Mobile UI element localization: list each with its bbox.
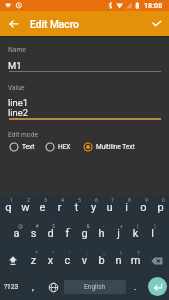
button[interactable]: _: [59, 221, 76, 247]
staticText: d: [42, 227, 59, 240]
button[interactable]: 4: [51, 195, 68, 221]
button[interactable]: +: [110, 221, 127, 247]
button[interactable]: 8: [118, 195, 135, 221]
staticText: l: [144, 227, 161, 240]
staticText: ?123: [4, 283, 19, 291]
staticText: b: [93, 254, 110, 267]
button[interactable]: $: [42, 221, 59, 247]
staticText: 4: [61, 197, 64, 203]
staticText: q: [0, 201, 17, 214]
button[interactable]: 0: [152, 195, 169, 221]
button[interactable]: ": [42, 248, 59, 274]
staticText: 6: [95, 197, 98, 203]
staticText: ": [52, 250, 54, 256]
button[interactable]: Delete: [144, 248, 169, 274]
button[interactable]: ): [144, 221, 161, 247]
button[interactable]: (: [127, 221, 144, 247]
staticText: Text: [22, 143, 35, 151]
staticText: k: [127, 227, 144, 240]
staticText: Name: [8, 46, 26, 54]
staticText: x: [42, 254, 59, 267]
button[interactable]: ': [59, 248, 76, 274]
button[interactable]: -: [93, 221, 110, 247]
staticText: line1 line2: [8, 97, 29, 119]
staticText: 3: [44, 197, 47, 203]
button[interactable]: #: [25, 221, 42, 247]
button[interactable]: Enter: [143, 274, 169, 300]
staticText: h: [93, 227, 110, 240]
button[interactable]: :: [76, 248, 93, 274]
staticText: s: [25, 227, 42, 240]
staticText: ': [69, 250, 70, 256]
staticText: c: [59, 254, 76, 267]
button[interactable]: Navigate up: [1, 11, 27, 36]
staticText: Value: [8, 84, 25, 92]
button[interactable]: &: [76, 221, 93, 247]
button[interactable]: 5: [68, 195, 85, 221]
button[interactable]: 2: [17, 195, 34, 221]
staticText: .: [134, 282, 137, 293]
button[interactable]: 1: [0, 195, 17, 221]
button[interactable]: ,: [22, 274, 43, 300]
staticText: 1: [10, 197, 13, 203]
staticText: z: [25, 254, 42, 267]
staticText: 2: [27, 197, 30, 203]
button[interactable]: Text: [9, 141, 35, 152]
button[interactable]: ?: [127, 248, 144, 274]
staticText: j: [110, 227, 127, 240]
button[interactable]: 6: [85, 195, 102, 221]
staticText: p: [152, 201, 169, 214]
staticText: $: [52, 223, 55, 229]
button[interactable]: 9: [135, 195, 152, 221]
button[interactable]: 7: [101, 195, 118, 221]
staticText: Edit Macro: [30, 19, 79, 31]
staticText: m: [127, 254, 144, 267]
staticText: r: [51, 201, 68, 214]
button[interactable]: !: [110, 248, 127, 274]
staticText: a: [8, 227, 25, 240]
staticText: &: [86, 223, 90, 229]
button[interactable]: ?123: [0, 274, 22, 300]
staticText: e: [34, 201, 51, 214]
staticText: M1: [8, 60, 22, 71]
button[interactable]: English: [64, 280, 126, 294]
button[interactable]: *: [25, 248, 42, 274]
button[interactable]: Shift: [0, 248, 25, 274]
staticText: Multiline Text: [96, 143, 135, 151]
staticText: @: [18, 223, 23, 229]
staticText: ): [154, 223, 156, 229]
button[interactable]: Change keyboard language: [43, 274, 64, 300]
staticText: 8: [128, 197, 131, 203]
staticText: *: [35, 250, 38, 256]
staticText: n: [110, 254, 127, 267]
staticText: 9: [145, 197, 148, 203]
staticText: +: [120, 223, 123, 229]
staticText: i: [118, 201, 135, 214]
button[interactable]: Multiline Text: [83, 141, 135, 152]
staticText: 0: [162, 197, 165, 203]
staticText: g: [76, 227, 93, 240]
staticText: -: [103, 223, 105, 229]
button[interactable]: .: [126, 274, 144, 300]
staticText: f: [59, 227, 76, 240]
staticText: t: [68, 201, 85, 214]
staticText: y: [85, 201, 102, 214]
button[interactable]: @: [8, 221, 25, 247]
staticText: !: [120, 250, 122, 256]
button[interactable]: Save: [145, 11, 169, 36]
staticText: ,: [32, 282, 34, 293]
staticText: ?: [137, 250, 140, 256]
staticText: :: [86, 250, 88, 256]
staticText: w: [17, 201, 34, 214]
button[interactable]: 3: [34, 195, 51, 221]
staticText: 5: [78, 197, 81, 203]
staticText: u: [101, 201, 118, 214]
staticText: Edit mode: [8, 131, 38, 139]
staticText: English: [84, 283, 106, 291]
button[interactable]: HEX: [45, 141, 71, 152]
staticText: _: [69, 223, 72, 229]
staticText: v: [76, 254, 93, 267]
staticText: ;: [103, 250, 105, 256]
staticText: 18:08: [144, 1, 163, 9]
button[interactable]: ;: [93, 248, 110, 274]
